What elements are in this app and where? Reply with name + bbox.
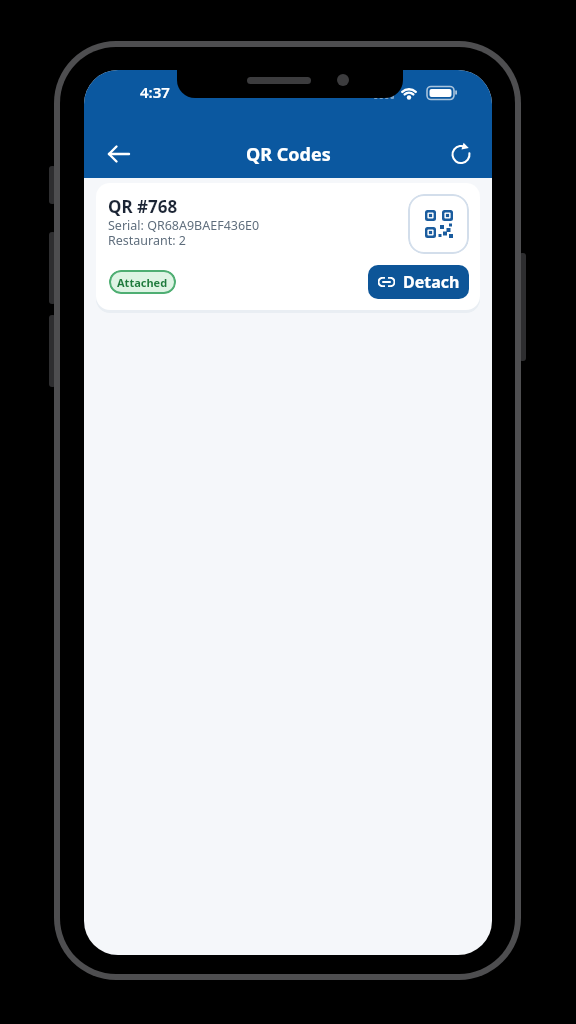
button[interactable]	[106, 140, 134, 168]
staticText: Attached	[117, 275, 168, 290]
button[interactable]: Attached	[109, 270, 176, 294]
button[interactable]: Detach	[368, 265, 469, 299]
button[interactable]: QR #768	[96, 183, 480, 310]
staticText: Restaurant: 2	[108, 232, 186, 249]
staticText: Detach	[403, 271, 460, 293]
staticText: Serial: QR68A9BAEF436E0	[108, 217, 260, 234]
staticText: 4:37	[140, 82, 170, 102]
staticText: QR #768	[108, 195, 178, 218]
staticText: QR Codes	[246, 142, 331, 167]
button[interactable]	[447, 140, 475, 168]
